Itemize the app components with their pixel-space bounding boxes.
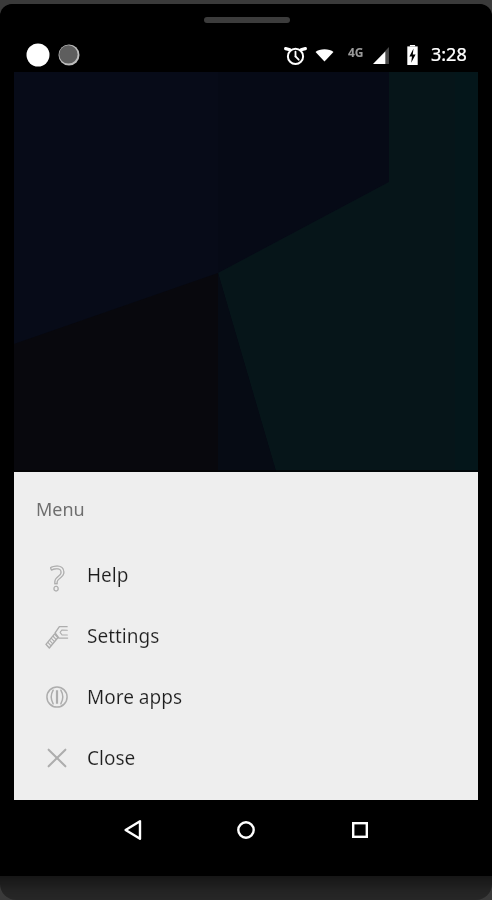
button[interactable]: Close	[14, 727, 478, 788]
staticText: ?	[50, 555, 65, 595]
staticText: Settings	[87, 623, 160, 649]
staticText: Help	[87, 562, 129, 588]
button[interactable]: Home	[224, 808, 268, 852]
staticText: Close	[87, 745, 136, 771]
button[interactable]: More apps	[14, 666, 478, 727]
staticText: 3:28	[431, 42, 467, 67]
button[interactable]: Recents	[338, 808, 382, 852]
staticText: More apps	[87, 684, 182, 710]
staticText: Menu	[36, 497, 85, 522]
button[interactable]: Settings	[14, 605, 478, 666]
staticText: 4G	[348, 44, 364, 60]
button[interactable]: ?	[14, 544, 478, 605]
button[interactable]: Back	[112, 808, 156, 852]
